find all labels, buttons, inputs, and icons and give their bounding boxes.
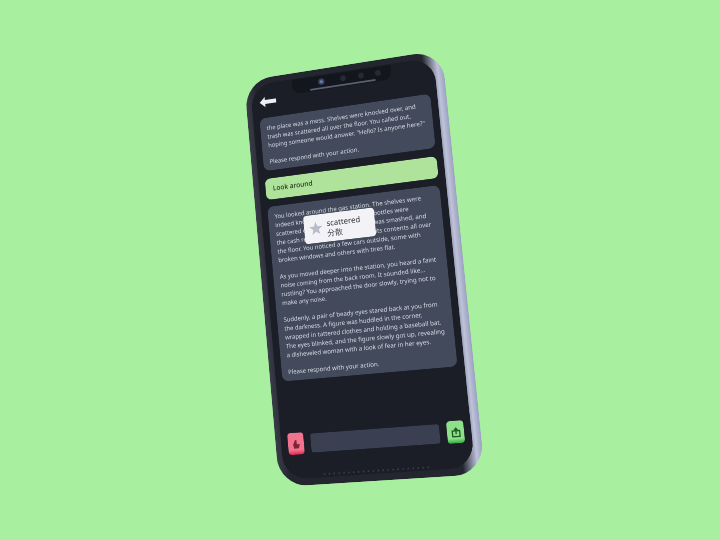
staticText: scattered (326, 213, 361, 228)
staticText: Suddenly, a pair of beady eyes stared ba… (283, 299, 448, 359)
staticText: Please respond with your action. (269, 145, 360, 165)
staticText: 分散 (327, 226, 343, 238)
button[interactable]: Tap hint (287, 432, 305, 455)
button[interactable]: You looked around the gas station. The s… (267, 185, 458, 382)
button[interactable]: the place was a mess. Shelves were knock… (259, 93, 436, 171)
button[interactable]: scattered (303, 207, 376, 244)
button[interactable]: Back (254, 87, 280, 115)
button[interactable]: Send (446, 420, 465, 444)
staticText: scattered everywhere. The counter was sm… (276, 210, 438, 264)
staticText: As you moved deeper into the station, yo… (279, 254, 443, 307)
staticText: You looked around the gas station. The s… (274, 192, 435, 229)
staticText: Please respond with your action. (288, 359, 380, 375)
staticText: the place was a mess. Shelves were knock… (266, 100, 427, 149)
button[interactable]: Look around (265, 156, 439, 200)
button[interactable] (310, 424, 441, 453)
staticText: Look around (272, 178, 314, 193)
